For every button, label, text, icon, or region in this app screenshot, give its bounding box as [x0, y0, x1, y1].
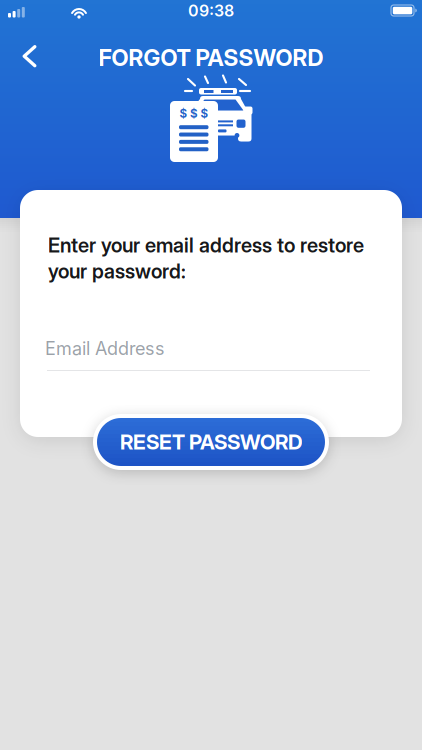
staticText: $	[190, 106, 198, 120]
button[interactable]: Back	[0, 38, 37, 67]
staticText: 09:38	[188, 1, 234, 20]
staticText: Email Address	[45, 337, 165, 359]
staticText: $	[180, 106, 188, 120]
staticText: Enter your email address to restore	[48, 233, 364, 257]
button[interactable]: RESET PASSWORD	[93, 414, 329, 470]
staticText: FORGOT PASSWORD	[98, 44, 323, 71]
staticText: $	[200, 106, 208, 120]
staticText: RESET PASSWORD	[120, 429, 302, 454]
button[interactable]: Email Address	[45, 337, 370, 371]
staticText: your password:	[48, 259, 186, 283]
